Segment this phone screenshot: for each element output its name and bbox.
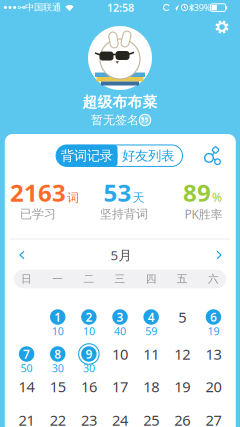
staticText: 词 xyxy=(67,190,79,205)
staticText: 11 xyxy=(143,344,159,364)
button[interactable]: 8 xyxy=(43,338,73,370)
staticText: 24 xyxy=(112,410,128,427)
staticText: 2 xyxy=(85,309,92,325)
staticText: 10 xyxy=(112,344,128,364)
button[interactable]: 4 xyxy=(136,301,166,333)
staticText: 30 xyxy=(83,361,95,375)
button[interactable]: 24 xyxy=(105,404,135,427)
staticText: 10 xyxy=(83,324,95,338)
staticText: 二 xyxy=(83,272,94,285)
staticText: 一 xyxy=(52,272,63,285)
button[interactable]: 1 xyxy=(43,301,73,333)
staticText: 10 xyxy=(52,324,64,338)
staticText: 27 xyxy=(205,410,221,427)
staticText: 6 xyxy=(210,309,217,325)
staticText: 16 xyxy=(81,377,97,396)
button[interactable]: 设置 xyxy=(211,16,233,38)
staticText: 21 xyxy=(19,410,35,427)
staticText: 17 xyxy=(112,377,128,396)
staticText: 5 xyxy=(178,307,186,327)
button[interactable]: 下个月 xyxy=(212,248,226,262)
staticText: 4 xyxy=(148,309,155,325)
staticText: 14 xyxy=(19,377,35,396)
button[interactable]: 20 xyxy=(198,370,228,402)
button[interactable]: 13 xyxy=(198,338,228,370)
staticText: 40 xyxy=(114,324,126,338)
staticText: 中国联通 xyxy=(25,2,61,13)
button[interactable]: 9 xyxy=(74,338,104,370)
button[interactable]: 6 xyxy=(198,301,228,333)
staticText: % xyxy=(212,189,222,205)
button[interactable]: 27 xyxy=(198,404,228,427)
button[interactable]: 16 xyxy=(74,370,104,402)
staticText: 已学习 xyxy=(20,207,56,221)
button[interactable]: 22 xyxy=(43,404,73,427)
staticText: 15 xyxy=(50,377,66,396)
button[interactable]: 15 xyxy=(43,370,73,402)
staticText: 三 xyxy=(114,272,125,285)
staticText: 日 xyxy=(21,272,32,285)
staticText: 25 xyxy=(143,410,159,427)
button[interactable]: 5 xyxy=(167,301,197,333)
staticText: 天 xyxy=(132,190,144,205)
staticText: 23 xyxy=(81,410,97,427)
button[interactable]: 好友列表 xyxy=(115,145,180,166)
staticText: 18 xyxy=(143,377,159,396)
button[interactable]: 21 xyxy=(12,404,42,427)
staticText: 超级布布菜 xyxy=(82,93,157,111)
staticText: 19 xyxy=(207,324,219,338)
staticText: 50 xyxy=(21,361,33,375)
button[interactable]: 14 xyxy=(12,370,42,402)
staticText: 13 xyxy=(205,344,221,364)
staticText: 89 xyxy=(183,177,211,208)
staticText: 20 xyxy=(205,377,221,396)
staticText: 12:58 xyxy=(107,0,134,15)
staticText: 好友列表 xyxy=(122,147,174,164)
staticText: 8 xyxy=(54,346,61,362)
button[interactable]: 3 xyxy=(105,301,135,333)
button[interactable]: 背词记录 xyxy=(56,145,117,166)
staticText: 2163 xyxy=(10,177,66,208)
button[interactable]: 11 xyxy=(136,338,166,370)
staticText: 59 xyxy=(145,324,157,338)
button[interactable]: 10 xyxy=(105,338,135,370)
staticText: 39% xyxy=(193,1,211,14)
button[interactable]: 17 xyxy=(105,370,135,402)
button[interactable]: 2 xyxy=(74,301,104,333)
staticText: 坚持背词 xyxy=(100,207,148,221)
button[interactable]: 23 xyxy=(74,404,104,427)
staticText: 四 xyxy=(146,272,157,285)
button[interactable]: 19 xyxy=(167,370,197,402)
staticText: 12 xyxy=(174,344,190,364)
staticText: 22 xyxy=(50,410,66,427)
staticText: 暂无签名 xyxy=(91,113,139,127)
button[interactable]: 18 xyxy=(136,370,166,402)
staticText: 26 xyxy=(174,410,190,427)
button[interactable]: 12 xyxy=(167,338,197,370)
staticText: 7 xyxy=(23,346,30,362)
staticText: 六 xyxy=(208,272,219,285)
staticText: 1 xyxy=(54,309,61,325)
button[interactable]: 上个月 xyxy=(15,248,29,262)
staticText: 五 xyxy=(177,272,188,285)
staticText: 3 xyxy=(116,309,123,325)
staticText: 9 xyxy=(85,346,92,362)
staticText: 5月 xyxy=(110,246,131,264)
staticText: PK胜率 xyxy=(184,206,222,222)
staticText: 53 xyxy=(103,177,131,208)
button[interactable]: 26 xyxy=(167,404,197,427)
staticText: 背词记录 xyxy=(61,147,113,164)
button[interactable]: 7 xyxy=(12,338,42,370)
button[interactable]: 分享 xyxy=(200,140,226,170)
staticText: 30 xyxy=(52,361,64,375)
button[interactable]: 25 xyxy=(136,404,166,427)
staticText: 19 xyxy=(174,377,190,396)
